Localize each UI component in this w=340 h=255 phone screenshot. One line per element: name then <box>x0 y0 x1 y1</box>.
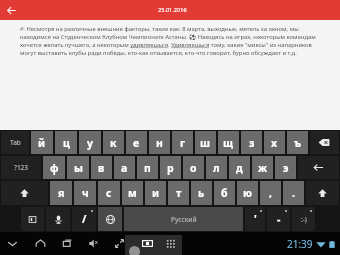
button[interactable]: Hide keyboard <box>1 232 23 255</box>
button[interactable] <box>1 181 48 205</box>
button[interactable]: д <box>229 156 250 179</box>
button[interactable]: н <box>149 131 170 154</box>
button[interactable]: ' <box>245 207 265 231</box>
staticText: а <box>121 161 128 175</box>
button[interactable] <box>310 131 339 154</box>
staticText: :-) <box>301 215 307 224</box>
button[interactable]: ж <box>252 156 273 179</box>
button[interactable]: р <box>160 156 181 179</box>
button[interactable]: э <box>275 156 296 179</box>
staticText: / <box>82 212 87 226</box>
button[interactable]: я <box>50 181 72 205</box>
button[interactable]: ь <box>191 181 212 205</box>
button[interactable]: в <box>91 156 112 179</box>
staticText: э <box>283 161 289 175</box>
staticText: п <box>144 161 151 175</box>
button[interactable]: - <box>267 207 290 231</box>
button[interactable]: Screenshot <box>136 232 158 255</box>
staticText: д <box>236 161 243 175</box>
button[interactable]: щ <box>218 131 239 154</box>
button[interactable]: п <box>137 156 158 179</box>
staticText: л <box>213 161 220 175</box>
button[interactable]: е <box>126 131 147 154</box>
staticText: , <box>269 186 272 200</box>
button[interactable]: с <box>98 181 120 205</box>
button[interactable]: ю <box>237 181 258 205</box>
staticText: ф <box>50 161 59 175</box>
button[interactable]: ф <box>43 156 65 179</box>
staticText: к <box>110 136 117 150</box>
button[interactable]: ы <box>67 156 89 179</box>
button[interactable]: . <box>283 181 304 205</box>
button[interactable]: ц <box>55 131 77 154</box>
button[interactable]: Apps <box>159 232 181 255</box>
button[interactable]: и <box>145 181 166 205</box>
staticText: ь <box>198 186 205 200</box>
button[interactable]: л <box>206 156 227 179</box>
button[interactable]: Volume <box>82 232 104 255</box>
button[interactable]: Home <box>29 232 51 255</box>
staticText: я <box>58 186 65 200</box>
button[interactable]: з <box>241 131 262 154</box>
staticText: Tab <box>10 138 21 147</box>
staticText: ✍️ Несмотря на различные внешние факторы… <box>20 25 317 57</box>
staticText: ц <box>63 136 70 150</box>
button[interactable]: Tab <box>1 131 29 154</box>
button[interactable]: о <box>183 156 204 179</box>
button[interactable]: , <box>260 181 281 205</box>
staticText: . <box>292 186 295 200</box>
staticText: ч <box>82 186 89 200</box>
button[interactable]: Back <box>3 2 19 18</box>
staticText: о <box>190 161 197 175</box>
staticText: в <box>98 161 105 175</box>
staticText: ы <box>74 161 83 175</box>
button[interactable]: м <box>122 181 143 205</box>
button[interactable]: к <box>103 131 124 154</box>
button[interactable]: / <box>72 207 96 231</box>
staticText: р <box>167 161 174 175</box>
button[interactable]: Expand <box>108 232 130 255</box>
button[interactable] <box>21 207 44 231</box>
button[interactable]: :-) <box>292 207 315 231</box>
button[interactable]: у <box>79 131 101 154</box>
staticText: е <box>133 136 140 150</box>
button[interactable] <box>46 207 70 231</box>
staticText: с <box>106 186 112 200</box>
staticText: ш <box>200 136 211 150</box>
staticText: ?123 <box>14 163 29 172</box>
staticText: и <box>152 186 160 200</box>
staticText: 25.01.2016 <box>158 6 187 14</box>
button[interactable]: Русский <box>124 207 243 231</box>
button[interactable]: ъ <box>287 131 308 154</box>
staticText: н <box>156 136 163 150</box>
staticText: - <box>277 212 281 226</box>
staticText: ю <box>243 186 252 200</box>
button[interactable]: ш <box>195 131 216 154</box>
button[interactable]: х <box>264 131 285 154</box>
button[interactable]: ч <box>74 181 96 205</box>
button[interactable] <box>298 156 339 179</box>
staticText: у <box>87 136 93 150</box>
staticText: щ <box>223 136 234 150</box>
button[interactable] <box>98 207 122 231</box>
button[interactable]: б <box>214 181 235 205</box>
staticText: з <box>249 136 255 150</box>
button[interactable]: й <box>31 131 53 154</box>
button[interactable]: ?123 <box>1 156 41 179</box>
button[interactable]: г <box>172 131 193 154</box>
staticText: б <box>221 186 228 200</box>
staticText: ж <box>258 161 268 175</box>
staticText: Русский <box>171 215 197 224</box>
button[interactable] <box>306 181 339 205</box>
staticText: ъ <box>294 136 302 150</box>
staticText: 21:39 <box>287 237 313 251</box>
staticText: м <box>128 186 137 200</box>
button[interactable]: т <box>168 181 189 205</box>
button[interactable]: Recents <box>56 232 78 255</box>
staticText: т <box>176 186 182 200</box>
button[interactable]: а <box>114 156 135 179</box>
staticText: г <box>180 136 185 150</box>
staticText: й <box>38 136 46 150</box>
